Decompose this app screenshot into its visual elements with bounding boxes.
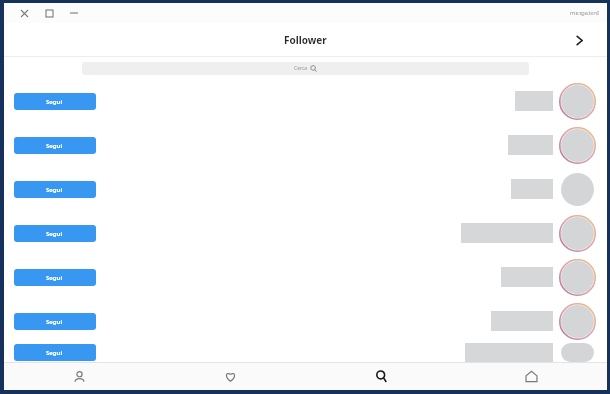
button[interactable]: Segui (4, 123, 607, 167)
staticText: Segui (46, 318, 63, 326)
button[interactable]: Search (306, 363, 457, 390)
button[interactable]: Segui (4, 211, 607, 255)
staticText: Segui (46, 186, 63, 194)
staticText: Segui (46, 230, 63, 238)
staticText: Segui (46, 98, 63, 106)
button[interactable]: Cerca (82, 62, 529, 75)
staticText: Segui (46, 274, 63, 282)
button[interactable]: Profile (4, 363, 155, 390)
staticText: Instagram (569, 9, 599, 17)
staticText: Segui (46, 142, 63, 150)
button[interactable]: Segui (14, 269, 96, 286)
button[interactable]: Home (457, 363, 607, 390)
button[interactable]: Segui (4, 79, 607, 123)
button[interactable]: Segui (14, 225, 96, 242)
button[interactable]: Maximize (39, 3, 59, 23)
button[interactable]: Segui (14, 313, 96, 330)
button[interactable]: Close (14, 3, 34, 23)
button[interactable]: Segui (14, 181, 96, 198)
staticText: Follower (284, 33, 327, 47)
button[interactable]: Segui (4, 299, 607, 343)
staticText: Segui (46, 349, 63, 357)
button[interactable]: Segui (14, 344, 96, 361)
button[interactable]: Back (565, 25, 595, 55)
button[interactable]: Segui (4, 343, 607, 362)
button[interactable]: Segui (14, 137, 96, 154)
button[interactable]: Activity (155, 363, 306, 390)
button[interactable]: Minimize (64, 3, 84, 23)
button[interactable]: Segui (4, 255, 607, 299)
button[interactable]: Segui (4, 167, 607, 211)
staticText: Cerca (294, 65, 308, 72)
button[interactable]: Segui (14, 93, 96, 110)
